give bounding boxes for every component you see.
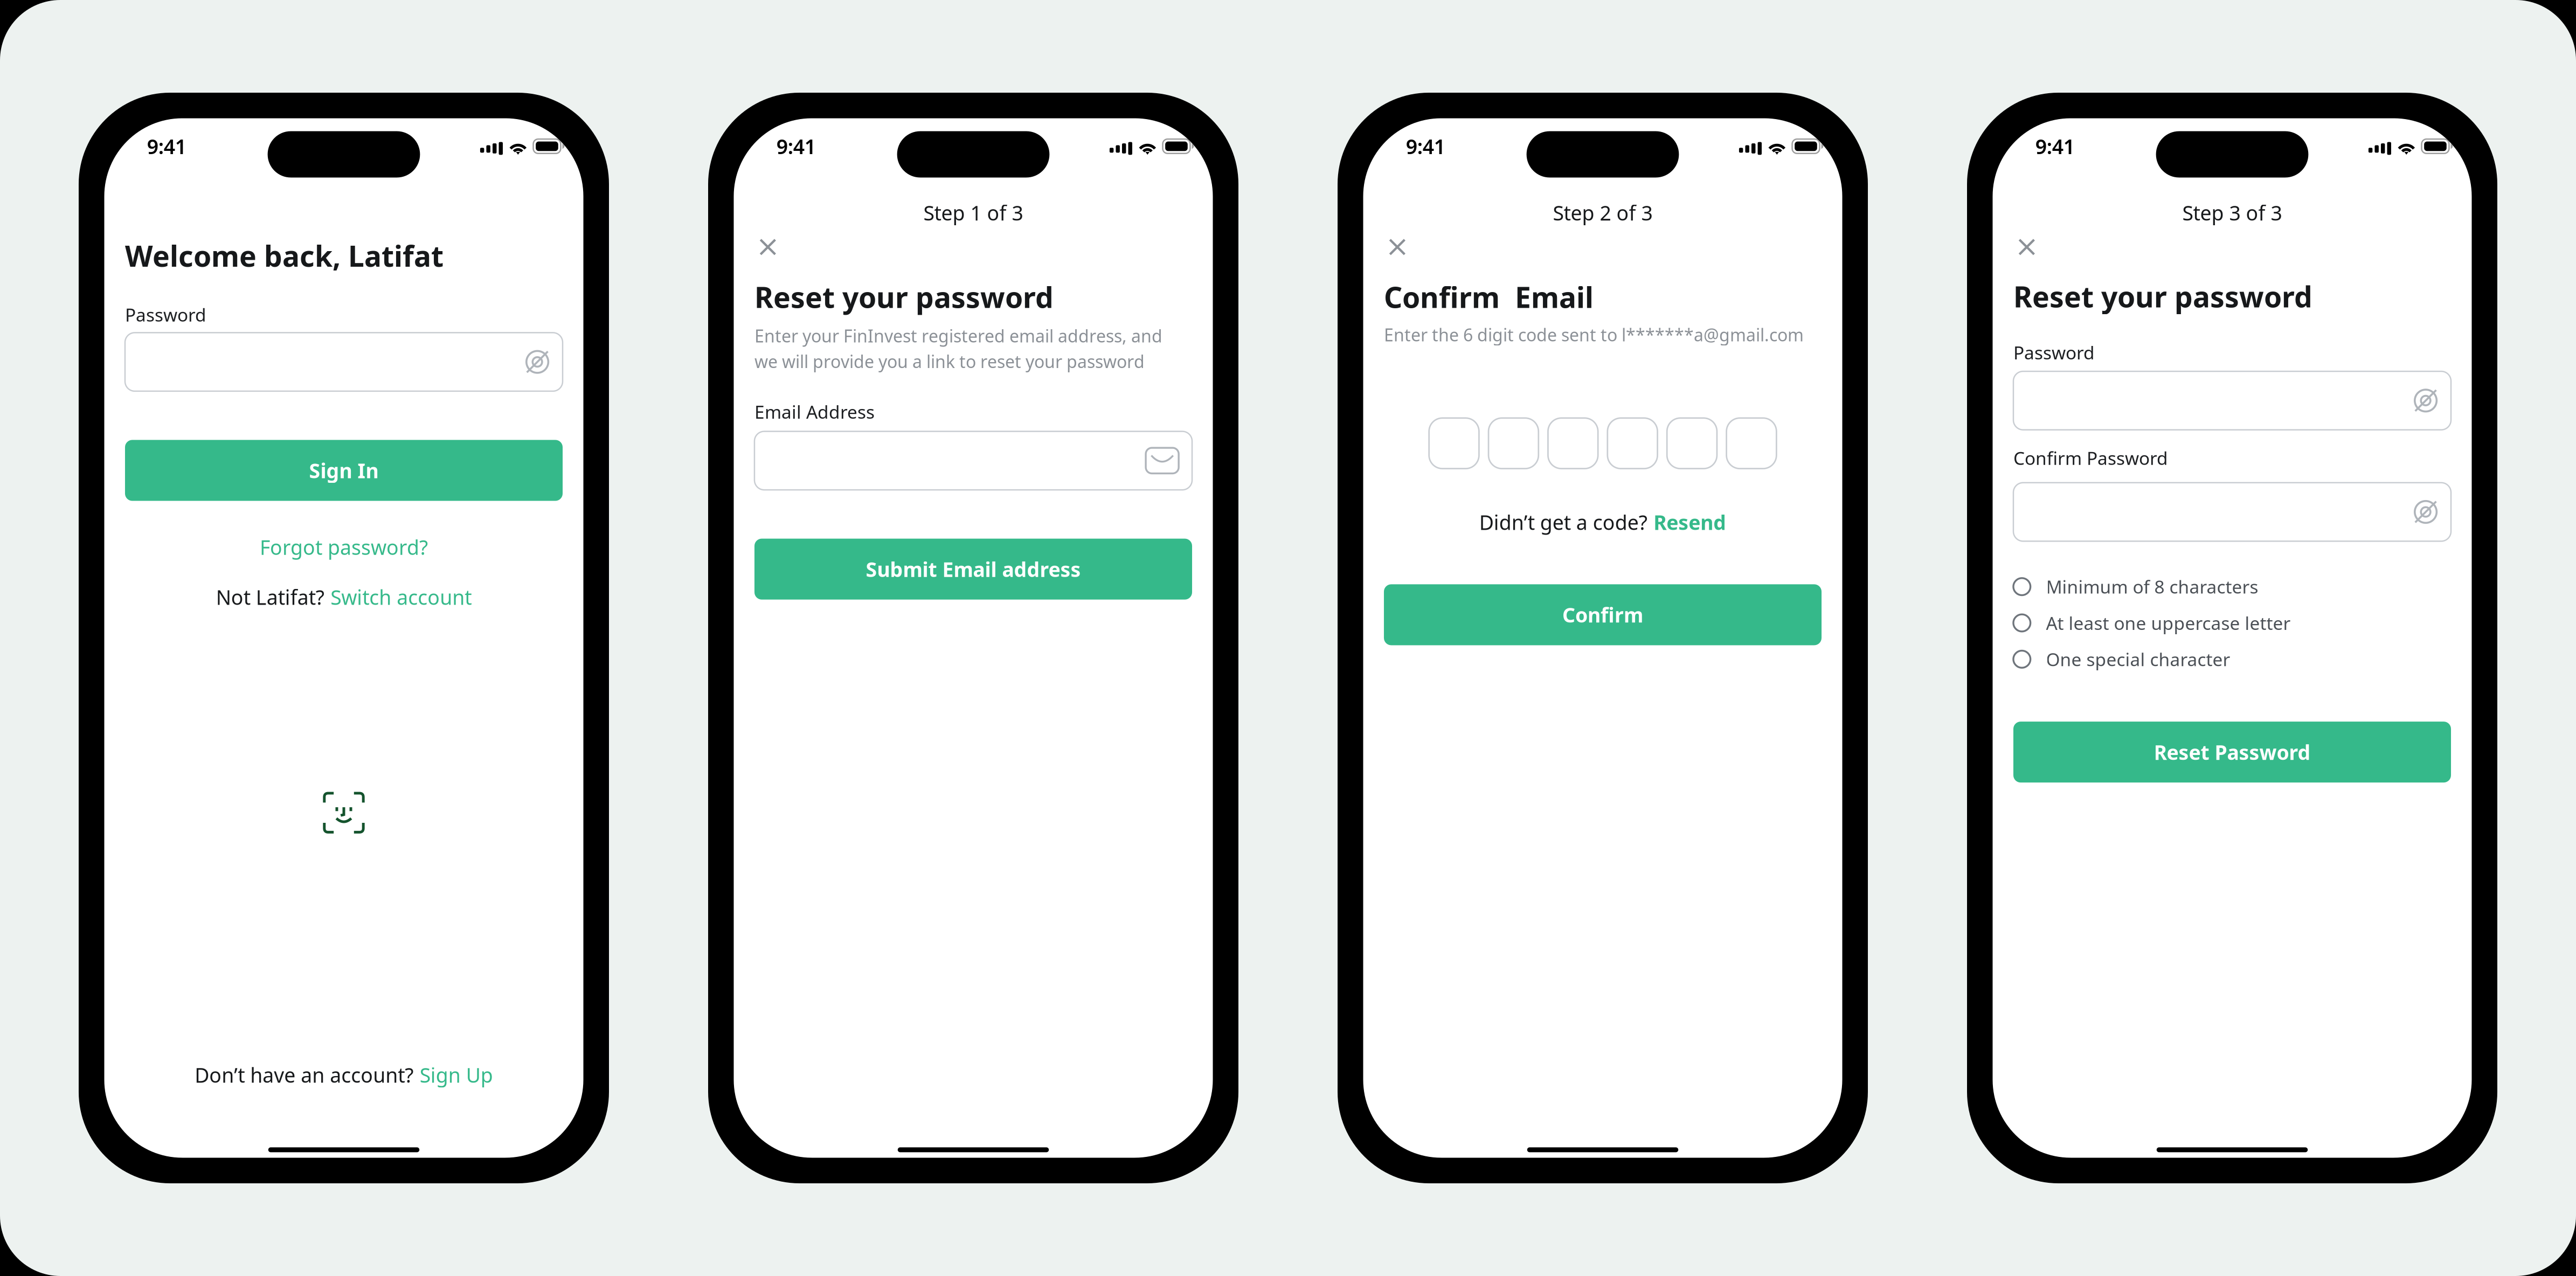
staticText: Step 1 of 3 [923,199,1023,226]
staticText: Resend [1653,509,1726,536]
staticText: Switch account [330,584,472,610]
button[interactable]: Reset Password [2013,722,2451,783]
button[interactable]: Close [754,234,781,260]
button[interactable]: Close [2013,234,2040,260]
staticText: Password [125,303,206,327]
staticText: Minimum of 8 characters [2046,575,2258,599]
staticText: Sign In [309,457,379,484]
staticText: Don’t have an account? [195,1062,414,1088]
button[interactable]: Close [1384,234,1411,260]
staticText: Didn’t get a code? [1479,509,1647,536]
button[interactable]: Sign in with Face ID [324,793,363,832]
staticText: Reset your password [2013,277,2312,315]
staticText: 9:41 [1406,133,1445,160]
staticText: Sign Up [420,1062,493,1088]
button[interactable]: Confirm [1384,584,1822,645]
button[interactable]: Sign In [125,440,563,501]
staticText: Email Address [754,400,875,424]
staticText: Confirm [1562,601,1643,628]
staticText: 9:41 [2035,133,2075,160]
staticText: Submit Email address [866,556,1081,582]
staticText: Welcome back, Latifat [125,237,444,275]
staticText: Forgot password? [260,534,428,561]
staticText: Enter your FinInvest registered email ad… [754,324,1162,373]
staticText: Enter the 6 digit code sent to l*******a… [1384,323,1804,346]
staticText: 9:41 [147,133,186,160]
staticText: Step 3 of 3 [2182,199,2282,226]
staticText: 9:41 [776,133,816,160]
button[interactable]: Forgot password? [252,526,435,568]
button[interactable]: Switch account [330,584,472,610]
button[interactable]: Resend [1653,509,1726,536]
staticText: One special character [2046,647,2230,671]
staticText: Not Latifat? [216,584,324,610]
button[interactable]: Sign Up [420,1062,493,1088]
staticText: Password [2013,341,2095,364]
button[interactable]: Submit Email address [754,539,1192,600]
staticText: Step 2 of 3 [1553,199,1653,226]
staticText: Confirm Password [2013,446,2168,470]
staticText: Reset Password [2154,739,2311,765]
staticText: At least one uppercase letter [2046,611,2291,635]
staticText: Confirm Email [1384,278,1594,316]
staticText: Reset your password [754,278,1054,316]
